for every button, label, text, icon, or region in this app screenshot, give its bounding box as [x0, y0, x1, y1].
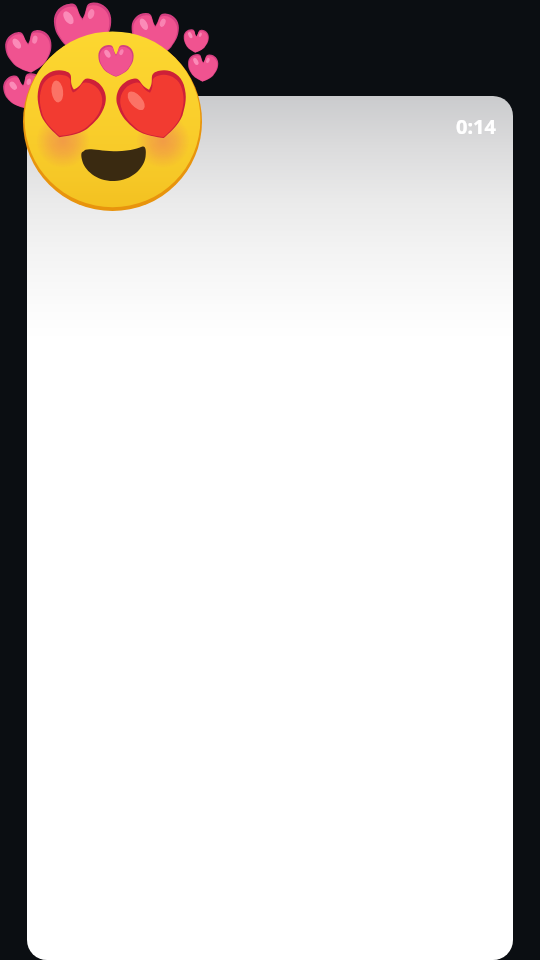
staticText: 0:14: [456, 113, 496, 140]
button[interactable]: 0:14: [27, 96, 513, 960]
button[interactable]: 0:14: [448, 106, 504, 147]
other: Smiling face with heart eyes reaction: [0, 0, 540, 960]
